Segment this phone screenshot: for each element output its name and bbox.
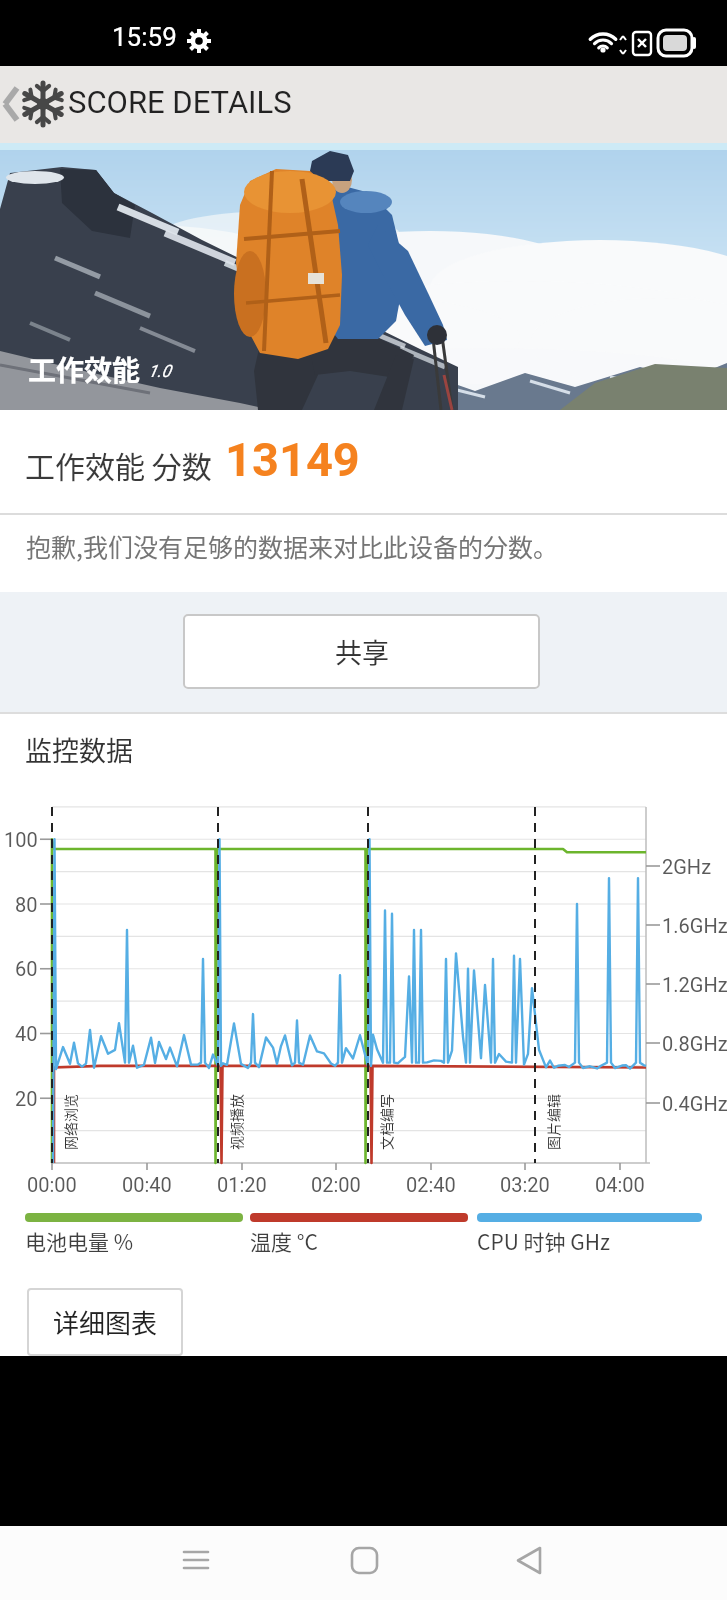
button[interactable]: 详细图表 — [27, 1288, 183, 1356]
button[interactable] — [172, 1536, 222, 1590]
button[interactable] — [504, 1536, 554, 1590]
staticText: 工作效能 分数 — [25, 443, 212, 486]
staticText: 15:59 — [112, 22, 177, 52]
button[interactable]: 共享 — [183, 614, 540, 689]
staticText: 监控数据 — [25, 730, 133, 769]
staticText: 详细图表 — [53, 1303, 158, 1341]
staticText: 抱歉,我们没有足够的数据来对比此设备的分数。 — [26, 528, 558, 564]
staticText: SCORE DETAILS — [68, 84, 292, 120]
staticText: 工作效能 — [28, 349, 141, 390]
button[interactable] — [339, 1536, 389, 1590]
staticText: 1.0 — [148, 361, 171, 381]
button[interactable] — [0, 80, 26, 128]
staticText: 13149 — [225, 432, 360, 487]
staticText: 共享 — [335, 632, 389, 671]
